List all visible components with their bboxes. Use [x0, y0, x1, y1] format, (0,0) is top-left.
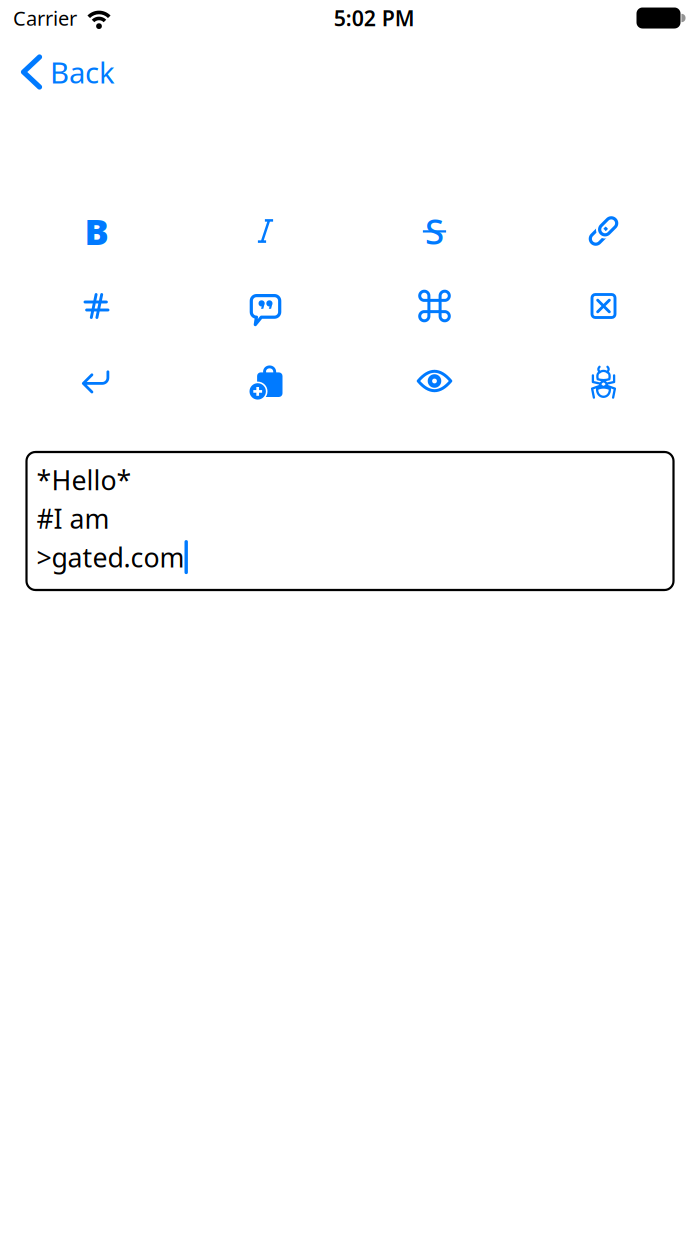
- staticText: S: [425, 208, 444, 254]
- button[interactable]: Strikethrough: [350, 198, 519, 264]
- button[interactable]: Link: [519, 198, 688, 264]
- staticText: 5:02 PM: [334, 4, 415, 32]
- button[interactable]: Quote: [181, 273, 350, 339]
- button[interactable]: Debug: [519, 348, 688, 414]
- staticText: Back: [50, 52, 115, 91]
- staticText: Carrier: [13, 5, 77, 31]
- button[interactable]: Bold: [12, 198, 181, 264]
- button[interactable]: Insert item: [181, 348, 350, 414]
- staticText: >gated.com: [36, 539, 184, 575]
- staticText: B: [84, 207, 108, 255]
- button[interactable]: Heading: [12, 273, 181, 339]
- button[interactable]: New line: [12, 348, 181, 414]
- button[interactable]: Preview: [350, 348, 519, 414]
- button[interactable]: Back: [0, 44, 129, 99]
- button[interactable]: Clear formatting: [519, 273, 688, 339]
- staticText: *Hello*: [36, 462, 131, 498]
- staticText: #I am: [36, 501, 109, 536]
- button[interactable]: Command: [350, 273, 519, 339]
- button[interactable]: Italic: [181, 198, 350, 264]
